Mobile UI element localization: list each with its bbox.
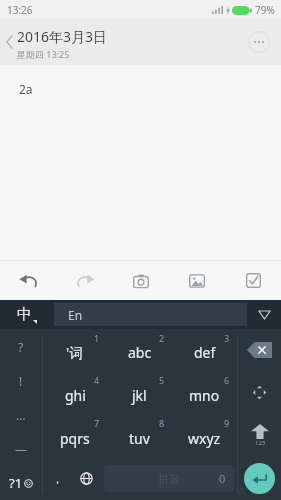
staticText: 4	[94, 374, 100, 386]
staticText: !	[19, 373, 23, 389]
button[interactable]: Hide keyboard	[247, 300, 281, 329]
button[interactable]: 7	[43, 414, 107, 457]
staticText: 拼音	[158, 472, 180, 486]
button[interactable]: 6	[172, 371, 237, 414]
button[interactable]: En	[54, 303, 247, 326]
staticText: '词	[66, 343, 84, 362]
button[interactable]: Back	[0, 19, 17, 65]
staticText: 9	[224, 417, 230, 429]
staticText: 8	[159, 417, 165, 429]
staticText: ?1	[9, 474, 23, 492]
button[interactable]: 8	[107, 414, 172, 457]
staticText: 星期四 13:25	[17, 48, 70, 60]
button[interactable]: —	[0, 432, 42, 466]
button[interactable]: Space	[104, 465, 234, 492]
staticText: 百	[238, 486, 247, 497]
staticText: 123	[255, 439, 266, 447]
staticText: ，	[52, 472, 63, 486]
button[interactable]: Delete	[238, 329, 281, 371]
staticText: 0	[219, 471, 226, 486]
staticText: 1	[94, 332, 100, 344]
staticText: 7	[94, 417, 100, 429]
staticText: ghi	[65, 386, 86, 405]
button[interactable]: !	[0, 364, 42, 398]
staticText: mno	[189, 386, 220, 405]
button[interactable]: Redo	[57, 261, 113, 300]
staticText: pqrs	[60, 429, 90, 448]
button[interactable]: 2	[107, 329, 172, 371]
staticText: 2a	[19, 81, 33, 97]
button[interactable]: Checklist	[225, 261, 281, 300]
button[interactable]: Input methods	[71, 457, 101, 500]
staticText: …	[16, 407, 26, 423]
staticText: 中	[17, 305, 32, 324]
button[interactable]: 3	[172, 329, 237, 371]
button[interactable]: Enter	[244, 463, 275, 494]
button[interactable]: ?	[0, 329, 42, 364]
button[interactable]: More options	[248, 31, 270, 53]
staticText: 6	[224, 374, 230, 386]
button[interactable]: ?1	[0, 466, 42, 500]
staticText: ?	[18, 339, 24, 355]
staticText: 5	[159, 374, 165, 386]
staticText: tuv	[129, 429, 150, 448]
staticText: abc	[128, 343, 152, 362]
button[interactable]: 9	[172, 414, 237, 457]
staticText: def	[194, 343, 216, 362]
button[interactable]: Numbers	[238, 414, 281, 457]
staticText: 79%	[255, 3, 275, 17]
staticText: jkl	[132, 386, 147, 405]
button[interactable]: Move cursor	[238, 371, 281, 414]
button[interactable]: Undo	[0, 261, 57, 300]
button[interactable]: Switch input language	[0, 300, 54, 329]
button[interactable]: ，	[43, 457, 71, 500]
staticText: En	[68, 307, 83, 323]
staticText: 13:26	[7, 3, 33, 17]
staticText: 2	[159, 332, 165, 344]
staticText: 2016年3月3日	[17, 27, 108, 46]
staticText: 3	[224, 332, 230, 344]
button[interactable]: Insert image	[169, 261, 225, 300]
button[interactable]: 4	[43, 371, 107, 414]
button[interactable]: 5	[107, 371, 172, 414]
button[interactable]: Camera	[113, 261, 169, 300]
staticText: wxyz	[188, 429, 221, 448]
button[interactable]: …	[0, 398, 42, 432]
staticText: —	[15, 441, 28, 457]
button[interactable]: 1	[43, 329, 107, 371]
